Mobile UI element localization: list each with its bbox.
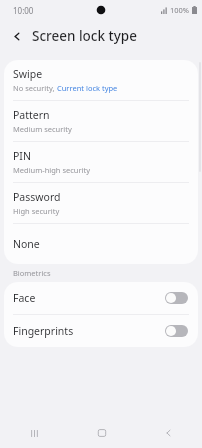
staticText: Fingerprints [13, 324, 165, 338]
button[interactable]: Home [68, 418, 135, 448]
staticText: 100% [170, 5, 190, 15]
button[interactable]: Back [6, 25, 28, 47]
staticText: Pattern [13, 108, 50, 122]
staticText: Face [13, 291, 165, 305]
button[interactable]: None [4, 224, 198, 264]
staticText: 10:00 [13, 5, 34, 16]
button[interactable]: Swipe [4, 60, 198, 100]
button[interactable]: Recent apps [0, 418, 68, 448]
staticText: Medium-high security [13, 165, 91, 175]
button[interactable]: Password [4, 183, 198, 223]
staticText: Swipe [13, 67, 43, 81]
staticText: None [13, 237, 40, 251]
staticText: Current lock type [57, 83, 118, 93]
staticText: Medium security [13, 124, 72, 134]
staticText: No security, [13, 83, 57, 93]
button[interactable]: Fingerprints [4, 315, 198, 347]
staticText: Biometrics [13, 268, 51, 278]
staticText: Password [13, 190, 61, 204]
button[interactable]: Face [4, 282, 198, 314]
staticText: Screen lock type [32, 27, 137, 45]
button[interactable]: Pattern [4, 101, 198, 141]
button[interactable]: Back [135, 418, 202, 448]
button[interactable]: PIN [4, 142, 198, 182]
staticText: PIN [13, 149, 31, 163]
staticText: High security [13, 206, 60, 216]
